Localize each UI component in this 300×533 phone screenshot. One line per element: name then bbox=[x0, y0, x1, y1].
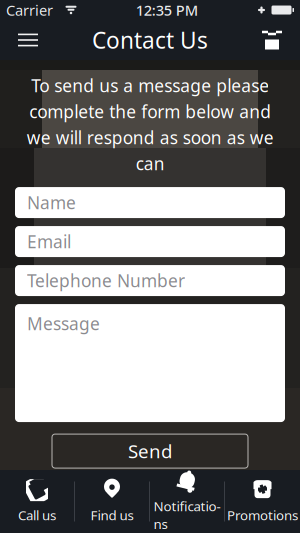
button[interactable]: Name bbox=[15, 187, 285, 218]
staticText: 12:35 PM bbox=[136, 0, 198, 20]
staticText: Carrier bbox=[6, 0, 53, 20]
button[interactable]: Email bbox=[15, 226, 285, 257]
staticText: Email bbox=[27, 230, 71, 253]
button[interactable]: Notifications bbox=[150, 470, 224, 533]
staticText: Promotions bbox=[227, 506, 298, 524]
button[interactable]: Call us bbox=[0, 470, 74, 533]
button[interactable]: Home bbox=[250, 20, 294, 60]
staticText: Telephone Number bbox=[27, 269, 185, 292]
staticText: Message bbox=[27, 312, 100, 335]
staticText: Find us bbox=[90, 506, 133, 524]
staticText: Contact Us bbox=[92, 25, 208, 55]
staticText: Notifications bbox=[153, 497, 220, 533]
button[interactable]: Find us bbox=[75, 470, 149, 533]
button[interactable]: Telephone Number bbox=[15, 265, 285, 296]
button[interactable]: Message bbox=[15, 304, 285, 422]
staticText: Call us bbox=[18, 506, 56, 524]
staticText: To send us a message please complete the… bbox=[26, 74, 273, 175]
staticText: Name bbox=[27, 191, 76, 214]
button[interactable]: Menu bbox=[6, 20, 50, 60]
button[interactable]: Promotions bbox=[225, 470, 300, 533]
button[interactable]: Send bbox=[52, 434, 248, 468]
staticText: Send bbox=[128, 439, 172, 463]
